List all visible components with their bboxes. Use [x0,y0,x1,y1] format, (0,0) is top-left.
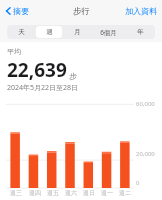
staticText: 20,000 [136,150,155,158]
staticText: 年 [137,28,144,36]
staticText: 加入資料 [125,6,157,16]
staticText: 60,000 [136,100,155,108]
staticText: 週四 [29,189,41,197]
button[interactable]: 摘要 [3,4,31,18]
staticText: 週五 [47,189,59,197]
staticText: 平均 [7,47,21,56]
button[interactable]: 6個月 [92,26,125,38]
staticText: 6個月 [100,28,117,37]
staticText: 0 [136,179,140,187]
staticText: 週三 [10,189,22,197]
staticText: 週 [46,28,53,36]
staticText: 週一 [101,189,113,197]
staticText: 週六 [65,189,77,197]
staticText: 步 [69,71,77,81]
button[interactable]: 天 [9,26,34,38]
button[interactable]: 年 [127,26,153,38]
staticText: 週日 [83,189,95,197]
button[interactable]: 週 [36,26,62,38]
staticText: 22,639 [7,57,67,83]
button[interactable]: 加入資料 [123,4,159,18]
button[interactable]: 月 [64,26,90,38]
staticText: 步行 [73,6,90,17]
staticText: 天 [18,28,25,36]
staticText: 月 [74,28,81,36]
staticText: 摘要 [13,6,29,16]
staticText: 2024年5月22日至28日 [7,83,79,93]
staticText: 週二 [119,189,131,197]
